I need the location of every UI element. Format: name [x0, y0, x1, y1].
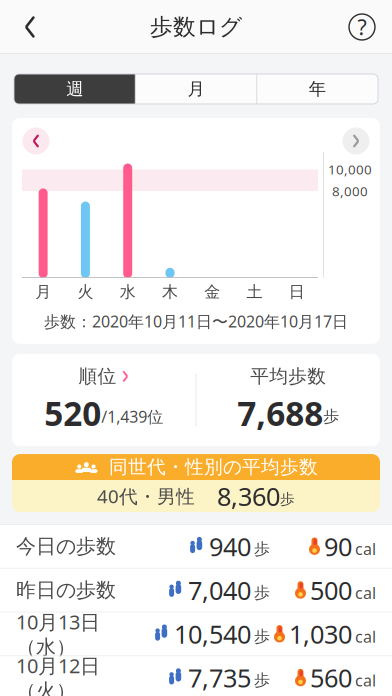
staticText: /1,439位 [101, 406, 163, 427]
button[interactable]: 月 [135, 74, 257, 104]
button[interactable]: ヘルプ [340, 5, 384, 49]
button[interactable]: 戻る [8, 5, 52, 49]
staticText: 同世代・性別の平均歩数 [109, 456, 318, 478]
staticText: 歩 [323, 407, 339, 426]
staticText: 40代・男性 [97, 484, 195, 508]
staticText: 歩数：2020年10月11日〜2020年10月17日 [44, 311, 348, 332]
staticText: 木 [162, 282, 178, 302]
staticText: 7,735 [188, 661, 251, 695]
staticText: 順位 [78, 365, 116, 388]
button[interactable]: 順位 [12, 354, 196, 446]
staticText: 歩数ログ [150, 13, 242, 41]
staticText: cal [355, 670, 376, 691]
staticText: 10,000 [328, 160, 372, 178]
staticText: 10月13日（水） [16, 608, 100, 659]
staticText: 金 [204, 282, 220, 302]
staticText: 平均歩数 [250, 365, 326, 388]
staticText: cal [355, 626, 376, 647]
button[interactable]: 昨日の歩数 [0, 569, 392, 612]
staticText: 水 [120, 282, 136, 302]
staticText: 週 [66, 78, 83, 100]
staticText: 90 [324, 530, 352, 563]
button[interactable]: 週 [14, 74, 135, 104]
staticText: 日 [289, 282, 305, 302]
staticText: 10月12日（火） [16, 652, 100, 696]
staticText: 7,688 [237, 391, 323, 435]
staticText: 今日の歩数 [16, 534, 116, 559]
button[interactable]: 今日の歩数 [0, 525, 392, 569]
button[interactable]: 次の週 [339, 124, 373, 158]
staticText: 歩 [280, 490, 295, 508]
staticText: ? [357, 13, 366, 41]
staticText: 月 [187, 78, 204, 100]
button[interactable]: 10月12日（火） [0, 656, 392, 696]
button[interactable]: 前の週 [19, 124, 53, 158]
button[interactable]: 10月13日（水） [0, 612, 392, 656]
staticText: 10,540 [174, 617, 251, 651]
staticText: 火 [77, 282, 93, 302]
staticText: 1,030 [289, 617, 352, 651]
staticText: 土 [247, 282, 263, 302]
staticText: 歩 [254, 583, 270, 603]
staticText: 歩 [254, 627, 270, 646]
staticText: 月 [35, 282, 51, 302]
staticText: 7,040 [188, 573, 251, 607]
button[interactable]: 年 [257, 74, 378, 104]
staticText: 年 [309, 78, 326, 100]
staticText: cal [355, 538, 376, 559]
staticText: 500 [310, 573, 352, 607]
staticText: 昨日の歩数 [16, 578, 116, 602]
staticText: 8,360 [217, 479, 280, 513]
staticText: cal [355, 582, 376, 603]
staticText: 940 [209, 530, 251, 563]
staticText: 560 [310, 661, 352, 695]
staticText: 歩 [254, 539, 270, 559]
staticText: 歩 [254, 670, 270, 690]
staticText: 8,000 [332, 182, 368, 200]
staticText: 520 [44, 391, 101, 435]
